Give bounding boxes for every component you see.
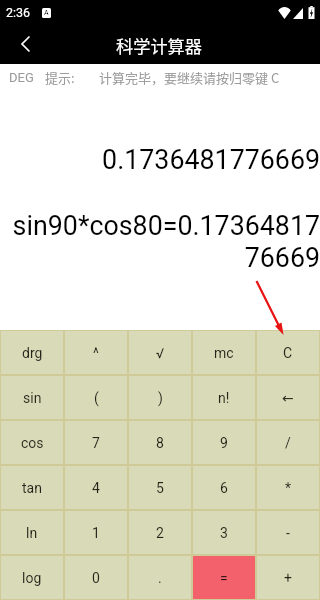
staticText: C [283,345,293,361]
staticText: n! [218,390,230,406]
staticText: - [286,525,290,541]
staticText: 9 [220,435,228,451]
button[interactable]: 7 [65,421,127,464]
staticText: 科学计算器 [116,33,202,58]
staticText: A [44,9,49,17]
button[interactable]: * [257,466,319,509]
staticText: 提示: [45,68,75,87]
button[interactable]: 0 [65,556,127,599]
staticText: √ [156,345,165,361]
staticText: sin90*cos80=0.17364817 [12,210,320,241]
staticText: 2:36 [6,5,31,20]
button[interactable]: 2 [129,511,191,554]
button[interactable]: . [129,556,191,599]
staticText: ( [94,390,99,406]
staticText: 8 [156,435,164,451]
button[interactable]: 5 [129,466,191,509]
button[interactable]: drg [1,331,63,374]
staticText: DEG [9,70,34,85]
staticText: 0 [92,570,100,586]
staticText: ^ [93,345,99,361]
staticText: sin [23,390,42,406]
button[interactable]: mc [193,331,255,374]
staticText: = [220,570,228,586]
button[interactable]: / [257,421,319,464]
button[interactable]: 3 [193,511,255,554]
button[interactable]: ← [257,376,319,419]
button[interactable]: 8 [129,421,191,464]
staticText: 0.1736481776669 [102,144,320,175]
staticText: / [285,435,291,451]
button[interactable]: ( [65,376,127,419]
button[interactable]: C [257,331,319,374]
staticText: 76669 [244,242,320,273]
button[interactable]: Back [0,24,40,64]
button[interactable]: √ [129,331,191,374]
staticText: 7 [92,435,100,451]
button[interactable]: log [1,556,63,599]
staticText: ← [282,390,294,406]
staticText: ln [26,525,38,541]
staticText: log [22,570,42,586]
button[interactable]: 4 [65,466,127,509]
staticText: 6 [220,480,228,496]
staticText: ) [158,390,163,406]
button[interactable]: n! [193,376,255,419]
staticText: 计算完毕，要继续请按归零键 C [99,68,280,87]
button[interactable]: ) [129,376,191,419]
button[interactable]: tan [1,466,63,509]
staticText: mc [214,345,234,361]
button[interactable]: 1 [65,511,127,554]
staticText: * [285,480,292,496]
staticText: . [158,570,162,586]
button[interactable]: + [257,556,319,599]
button[interactable]: cos [1,421,63,464]
button[interactable]: 6 [193,466,255,509]
staticText: 2 [156,525,164,541]
staticText: + [284,570,292,586]
staticText: 3 [220,525,228,541]
button[interactable]: - [257,511,319,554]
staticText: cos [21,435,44,451]
staticText: drg [22,345,43,361]
staticText: tan [22,480,42,496]
button[interactable]: sin [1,376,63,419]
button[interactable]: 9 [193,421,255,464]
button[interactable]: = [193,556,255,599]
staticText: 1 [92,525,100,541]
button[interactable]: ^ [65,331,127,374]
staticText: 5 [156,480,164,496]
staticText: 4 [92,480,100,496]
button[interactable]: ln [1,511,63,554]
